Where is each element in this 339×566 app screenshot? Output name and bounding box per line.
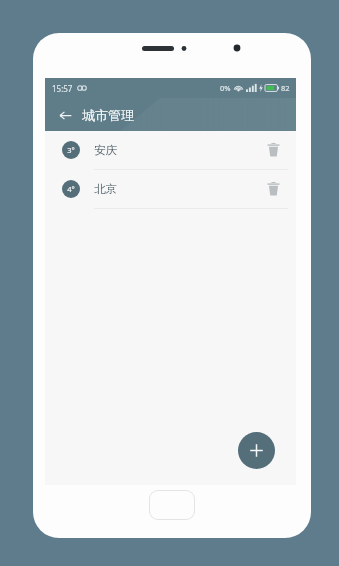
button[interactable]: Back [53, 103, 77, 127]
staticText: 15:57 [52, 83, 73, 94]
staticText: 4° [67, 184, 75, 194]
button[interactable]: Delete 北京 [258, 174, 288, 204]
staticText: 城市管理 [82, 107, 134, 123]
staticText: 安庆 [94, 143, 117, 157]
button[interactable]: 3° [45, 131, 296, 169]
button[interactable]: 4° [45, 170, 296, 208]
staticText: 3° [67, 145, 75, 155]
button[interactable]: Add city [238, 432, 275, 469]
staticText: 0% [220, 83, 231, 93]
staticText: 82 [281, 83, 290, 93]
button[interactable]: Delete 安庆 [258, 135, 288, 165]
staticText: 北京 [94, 182, 117, 196]
